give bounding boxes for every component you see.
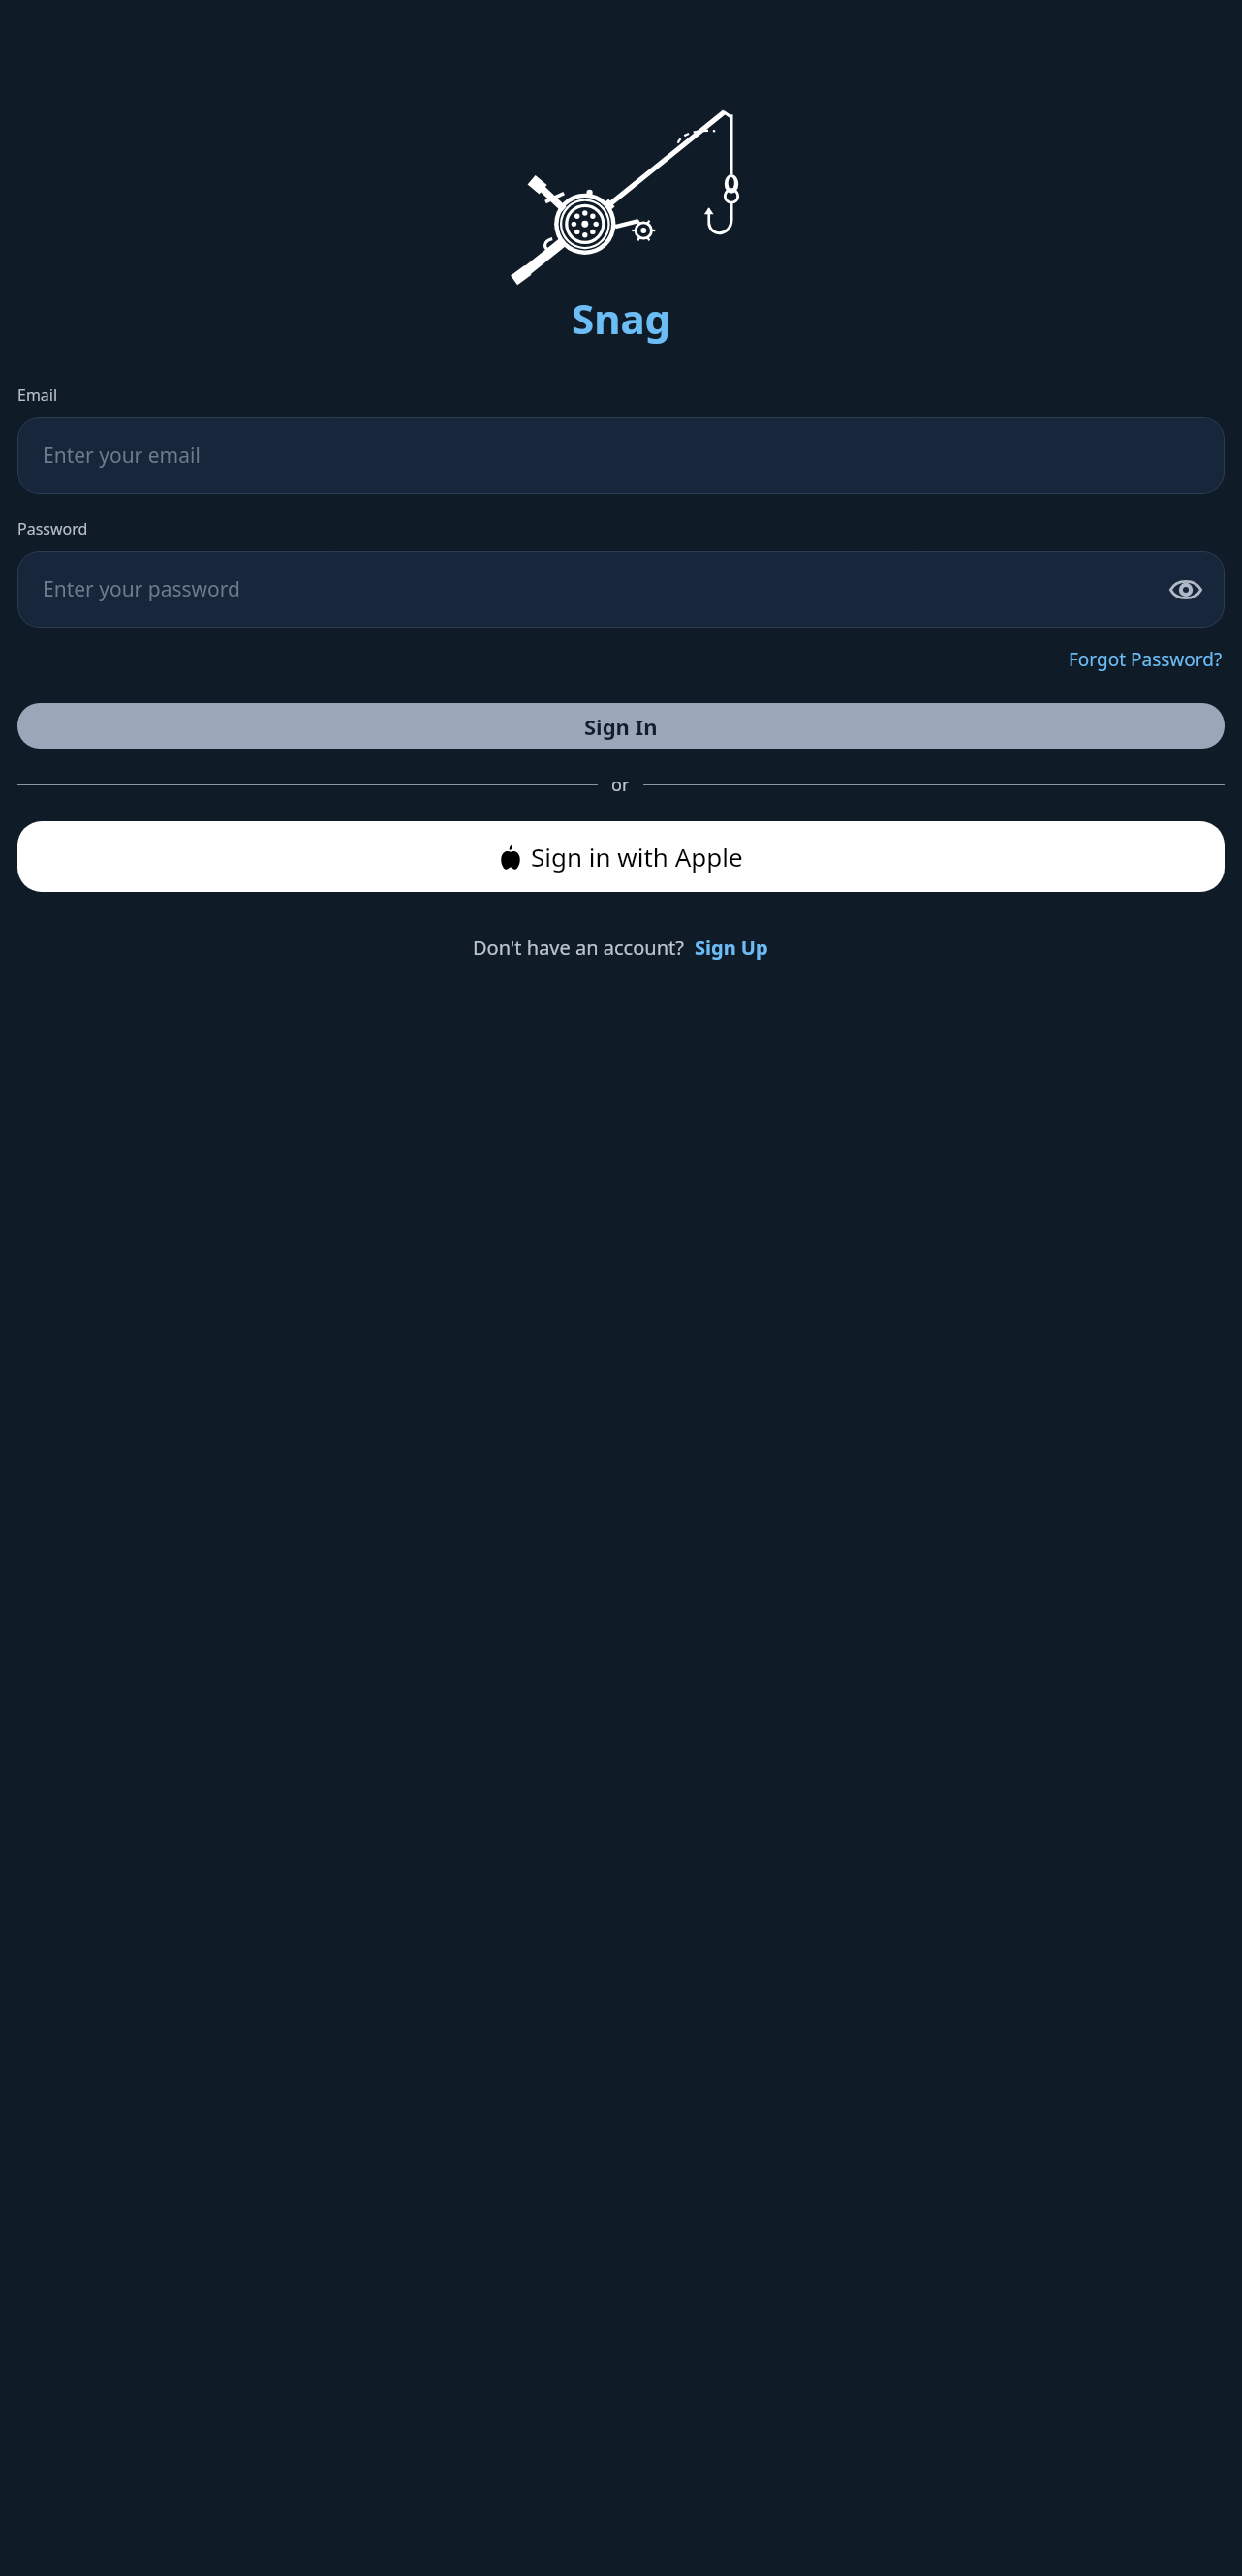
staticText: Sign Up (695, 935, 768, 961)
staticText: Password (17, 518, 88, 539)
button[interactable]: Sign In (17, 703, 1225, 749)
button[interactable]: Enter your email (17, 417, 1225, 494)
staticText: Sign in with Apple (531, 840, 743, 874)
staticText: Enter your password (43, 575, 240, 603)
staticText: Forgot Password? (1069, 647, 1223, 672)
staticText: Don't have an account? (473, 935, 684, 961)
staticText: Snag (572, 291, 671, 346)
staticText: or (611, 773, 630, 797)
staticText: Sign In (584, 712, 658, 741)
button[interactable]: Sign Up (693, 931, 770, 965)
staticText: Email (17, 384, 58, 406)
button[interactable]: Enter your password (17, 551, 1225, 628)
button[interactable]: Show password (1163, 567, 1209, 613)
button[interactable]: Forgot Password? (1067, 643, 1225, 676)
staticText: Enter your email (43, 442, 201, 470)
button[interactable]: Sign in with Apple (17, 821, 1225, 892)
